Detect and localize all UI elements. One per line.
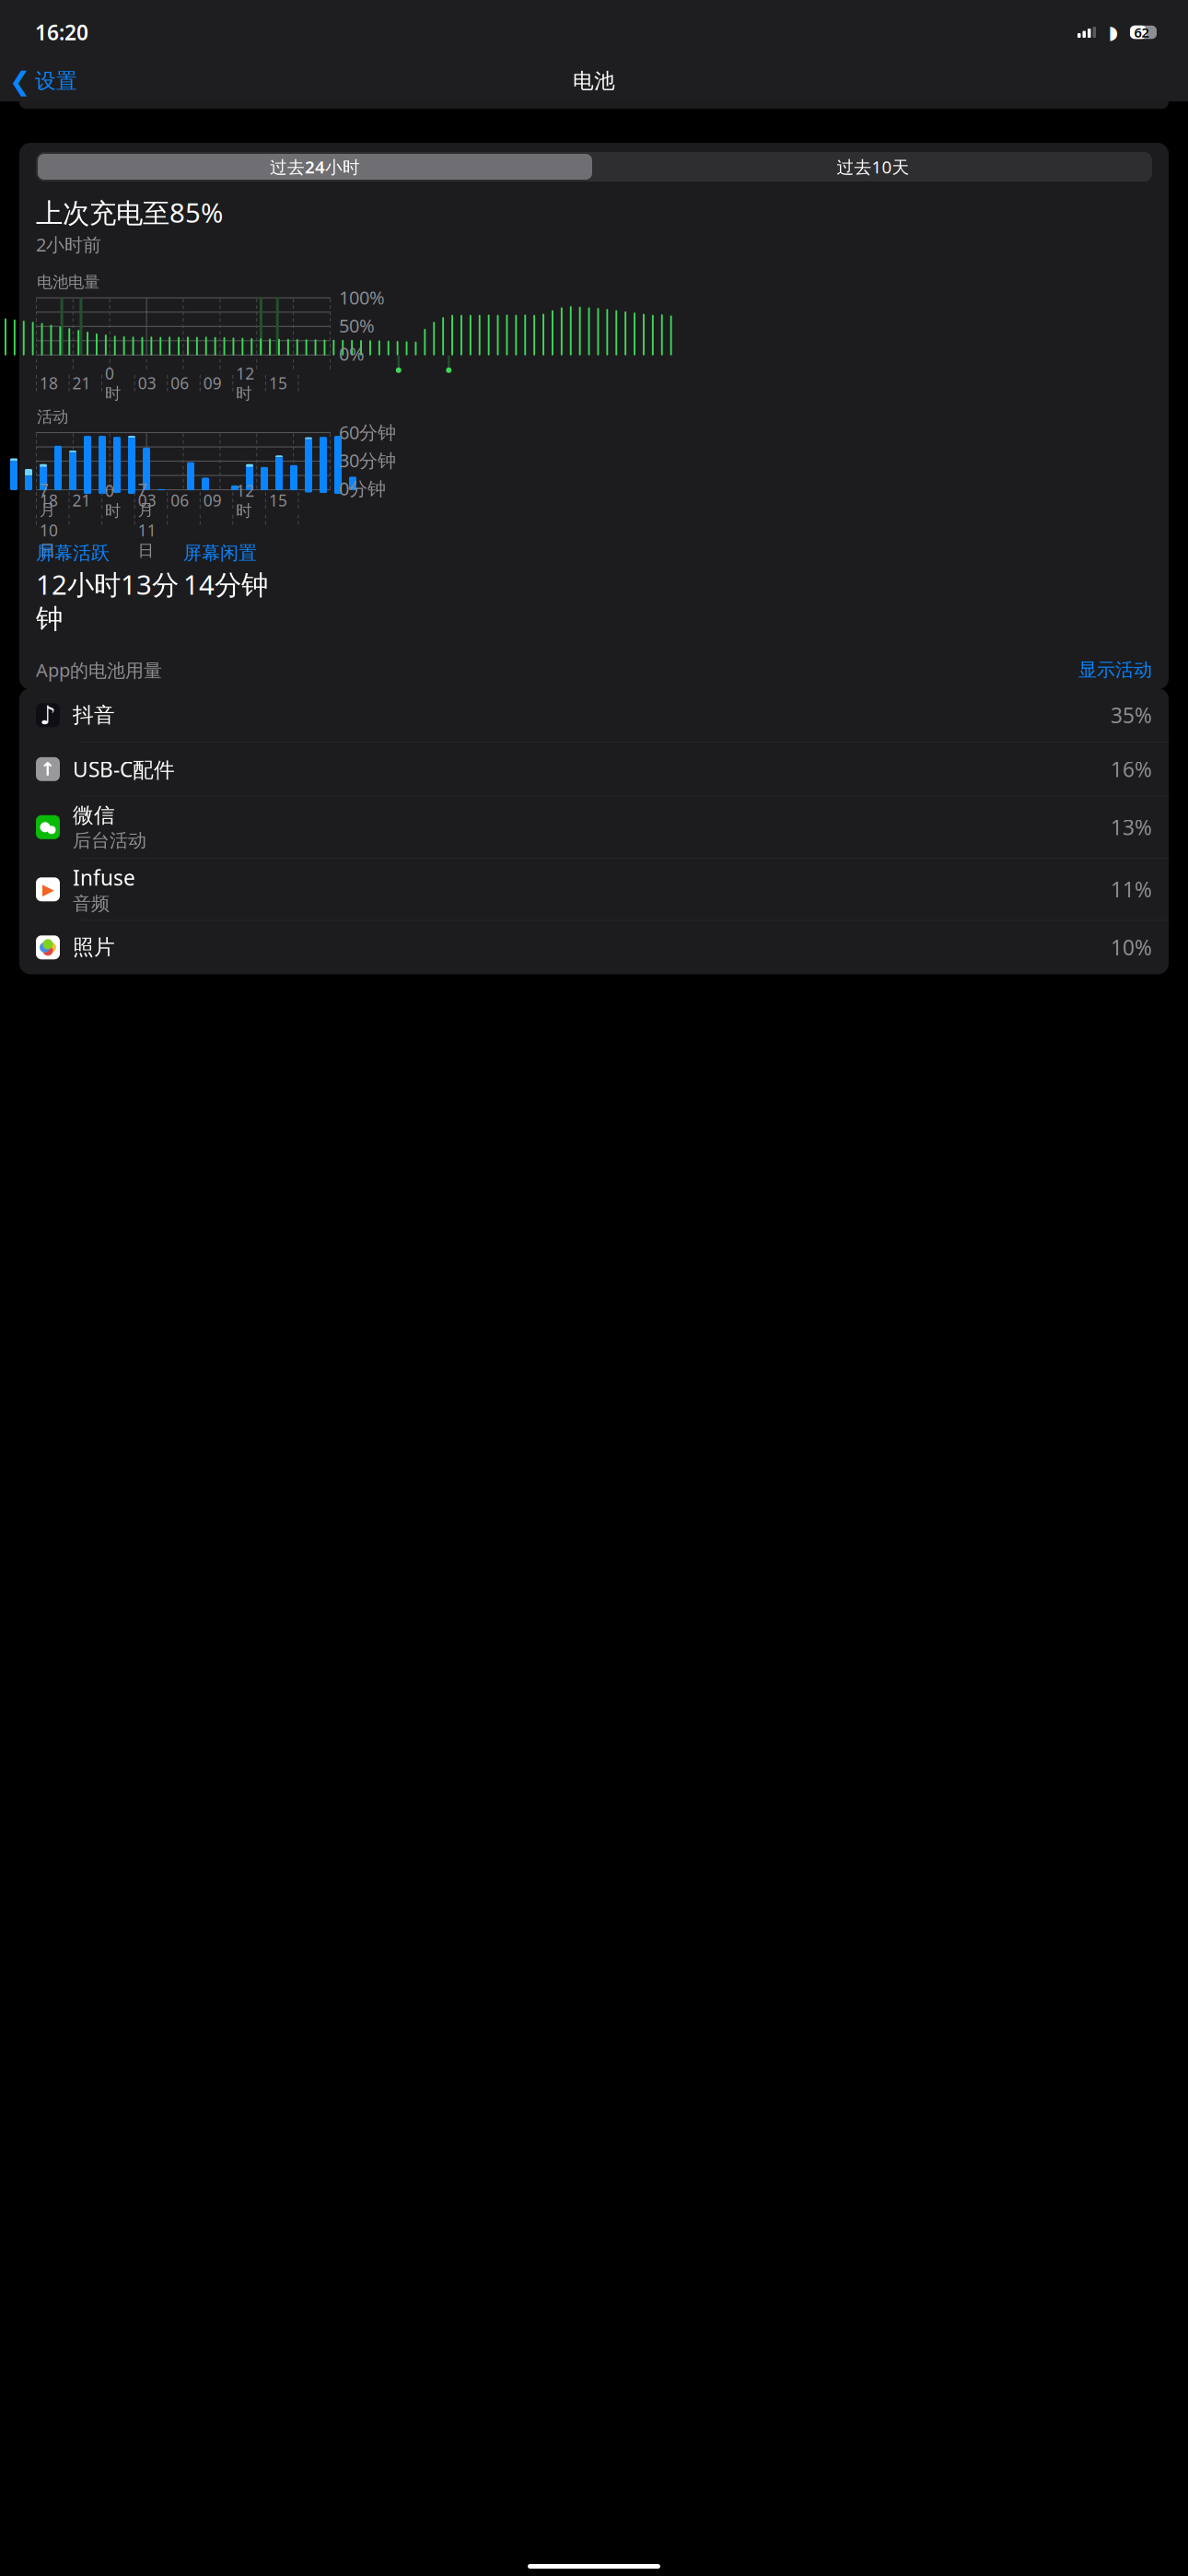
staticText: 电池电量	[37, 272, 99, 292]
staticText: 电池	[573, 68, 615, 94]
staticText: 微信	[73, 803, 115, 828]
staticText: 10%	[1111, 934, 1152, 961]
staticText: 0时	[105, 363, 121, 403]
staticText: 100%	[339, 285, 385, 310]
staticText: 12时	[236, 363, 254, 403]
staticText: 60分钟	[339, 420, 396, 444]
button[interactable]: 过去24小时	[36, 154, 594, 180]
staticText: 2小时前	[36, 232, 101, 257]
staticText: 16:20	[35, 18, 88, 46]
staticText: 后台活动	[73, 829, 146, 852]
staticText: 03	[138, 490, 156, 511]
staticText: 照片	[73, 935, 115, 960]
staticText: 21	[72, 490, 91, 511]
staticText: 上次充电至85%	[36, 194, 223, 230]
staticText: 过去24小时	[270, 155, 360, 178]
button[interactable]: 过去10天	[594, 154, 1152, 180]
staticText: ♪	[40, 701, 56, 730]
staticText: 35%	[1111, 701, 1152, 729]
staticText: 09	[203, 372, 222, 394]
staticText: 06	[171, 372, 189, 394]
staticText: 15	[269, 490, 287, 511]
staticText: 7月11日	[138, 479, 156, 561]
staticText: 15	[269, 372, 287, 394]
staticText: 03	[138, 372, 156, 394]
staticText: 7月10日	[40, 479, 58, 561]
staticText: 14分钟	[183, 566, 268, 602]
staticText: 抖音	[73, 702, 115, 728]
button[interactable]: ❮	[4, 61, 83, 101]
staticText: 30分钟	[339, 448, 396, 473]
staticText: 设置	[35, 68, 77, 94]
staticText: 16%	[1111, 755, 1152, 783]
staticText: 06	[171, 490, 189, 511]
staticText: 09	[203, 490, 222, 511]
staticText: 13%	[1111, 813, 1152, 841]
button[interactable]: ♪	[19, 688, 1169, 742]
staticText: 0分钟	[339, 476, 386, 501]
staticText: 62	[1134, 23, 1149, 41]
button[interactable]: ▶	[19, 858, 1169, 921]
staticText: 活动	[37, 407, 68, 427]
staticText: 音频	[73, 892, 110, 915]
staticText: 显示活动	[1078, 658, 1152, 681]
staticText: 21	[72, 372, 91, 394]
staticText: 50%	[339, 313, 375, 338]
button[interactable]: ↑	[19, 742, 1169, 796]
staticText: 过去10天	[837, 155, 909, 178]
staticText: 0时	[105, 480, 121, 521]
staticText: 屏幕活跃	[36, 542, 110, 564]
staticText: 11%	[1111, 876, 1152, 903]
staticText: App的电池用量	[36, 657, 162, 682]
staticText: ❮	[9, 66, 30, 96]
staticText: USB-C配件	[73, 755, 175, 783]
staticText: 12小时13分钟	[36, 566, 179, 635]
staticText: 12时	[236, 480, 254, 521]
staticText: ▶	[42, 880, 54, 898]
staticText: 18	[40, 372, 58, 394]
button[interactable]: 微信	[19, 796, 1169, 858]
staticText: 0%	[339, 341, 365, 366]
staticText: 18	[40, 490, 58, 511]
staticText: ◗	[1108, 22, 1118, 43]
staticText: Infuse	[73, 864, 135, 891]
button[interactable]: 显示活动	[1078, 658, 1152, 681]
button[interactable]: 照片	[19, 921, 1169, 974]
staticText: 屏幕闲置	[183, 542, 257, 564]
staticText: ↑	[40, 759, 56, 780]
